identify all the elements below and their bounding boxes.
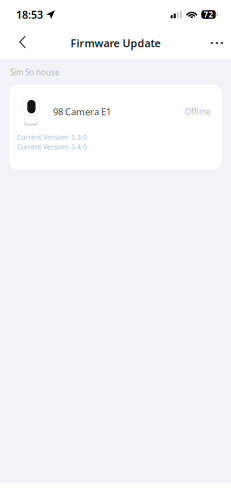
staticText: Current Version: 3.3.0 [17,133,87,141]
staticText: 18:53 [16,7,43,22]
button[interactable]: 98 Camera E1 [9,85,222,170]
staticText: 72 [203,9,213,20]
button[interactable]: Back [0,29,39,57]
staticText: Current Version: 3.4.0 [17,142,87,151]
staticText: Sim So house [10,67,60,78]
staticText: Offline [185,106,211,117]
staticText: 98 Camera E1 [53,105,111,118]
button[interactable]: More options [197,29,231,57]
staticText: Firmware Update [70,36,160,50]
